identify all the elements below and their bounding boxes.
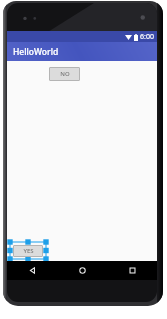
button[interactable]: YES bbox=[13, 245, 43, 257]
button[interactable]: Back bbox=[7, 261, 57, 280]
staticText: NO bbox=[60, 70, 70, 78]
staticText: 6:00 bbox=[140, 32, 154, 42]
staticText: HelloWorld bbox=[13, 46, 59, 58]
staticText: YES bbox=[23, 247, 34, 255]
button[interactable]: Recent apps bbox=[107, 261, 157, 280]
button[interactable]: Home bbox=[57, 261, 107, 280]
button[interactable]: NO bbox=[49, 67, 80, 81]
